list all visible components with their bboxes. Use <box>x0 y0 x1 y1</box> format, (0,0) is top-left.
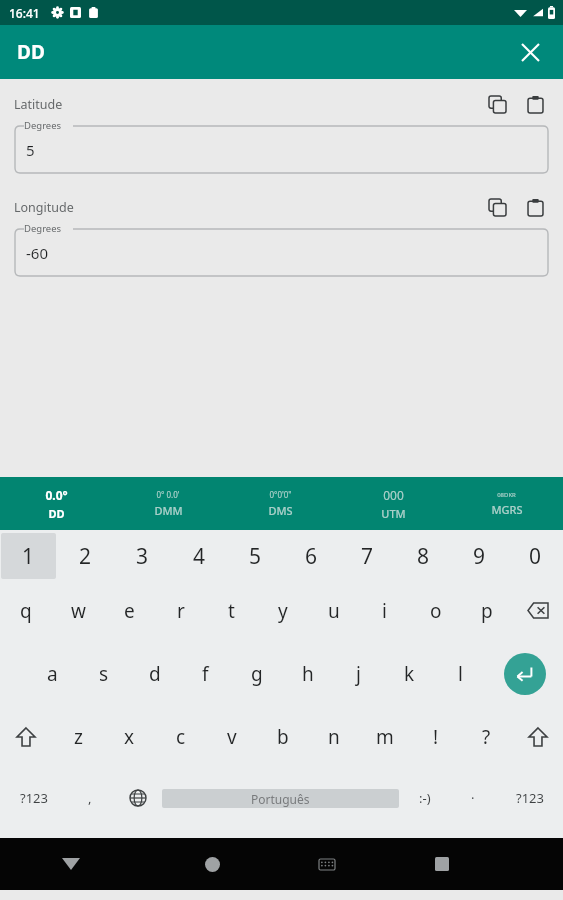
button[interactable]: 0.0° <box>0 477 112 530</box>
button[interactable]: ?123 <box>496 768 563 828</box>
button[interactable]: Shift <box>512 705 563 768</box>
staticText: v <box>227 724 237 750</box>
button[interactable]: 6 <box>284 533 338 579</box>
button[interactable]: 8 <box>396 533 450 579</box>
button[interactable]: g <box>231 642 282 705</box>
button[interactable]: n <box>308 705 359 768</box>
staticText: :-) <box>419 789 431 807</box>
button[interactable]: Backspace <box>512 579 563 642</box>
staticText: DMS <box>268 503 293 518</box>
button[interactable]: , <box>67 768 113 828</box>
staticText: m <box>376 724 394 750</box>
button[interactable]: :-) <box>399 768 450 828</box>
button[interactable]: t <box>206 579 257 642</box>
button[interactable]: Hide keyboard <box>0 838 141 890</box>
staticText: l <box>458 661 463 687</box>
button[interactable]: 5 <box>228 533 282 579</box>
staticText: j <box>356 661 361 687</box>
button[interactable]: ? <box>461 705 512 768</box>
button[interactable]: 9 <box>452 533 506 579</box>
button[interactable]: i <box>359 579 410 642</box>
staticText: g <box>251 661 263 687</box>
button[interactable]: k <box>384 642 435 705</box>
button[interactable]: · <box>450 768 496 828</box>
staticText: MGRS <box>491 502 523 517</box>
button[interactable]: e <box>104 579 155 642</box>
button[interactable]: Shift <box>0 705 52 768</box>
button[interactable]: Change language <box>113 768 162 828</box>
staticText: c <box>176 724 186 750</box>
button[interactable]: x <box>104 705 155 768</box>
button[interactable]: 2 <box>58 533 113 579</box>
staticText: DMM <box>154 503 183 518</box>
staticText: q <box>20 598 32 624</box>
button[interactable]: Português <box>162 768 399 828</box>
staticText: 5 <box>249 542 262 571</box>
button[interactable]: 000 <box>337 477 450 530</box>
button[interactable]: v <box>206 705 257 768</box>
button[interactable]: Paste Longitude <box>517 191 553 223</box>
button[interactable]: 4 <box>172 533 226 579</box>
button[interactable]: Close <box>509 31 551 73</box>
button[interactable]: c <box>155 705 206 768</box>
button[interactable]: 0° 0.0' <box>112 477 224 530</box>
button[interactable]: z <box>52 705 104 768</box>
staticText: t <box>228 598 235 624</box>
button[interactable]: j <box>333 642 384 705</box>
button[interactable]: ?123 <box>0 768 67 828</box>
button[interactable]: 0°0'0" <box>224 477 337 530</box>
staticText: 0.0° <box>45 487 68 503</box>
button[interactable]: Paste Latitude <box>517 88 553 120</box>
button[interactable]: Degrees <box>15 120 548 173</box>
button[interactable]: 1 <box>1 533 56 579</box>
staticText: b <box>277 724 289 750</box>
staticText: -60 <box>26 243 48 263</box>
button[interactable]: r <box>155 579 206 642</box>
staticText: u <box>328 598 340 624</box>
staticText: 0° 0.0' <box>156 489 180 500</box>
button[interactable]: s <box>78 642 129 705</box>
staticText: UTM <box>381 506 406 521</box>
staticText: · <box>471 789 475 807</box>
staticText: Degrees <box>24 222 62 235</box>
button[interactable]: o <box>410 579 461 642</box>
button[interactable]: m <box>359 705 410 768</box>
button[interactable]: Enter <box>486 642 563 705</box>
staticText: 0 <box>529 542 542 571</box>
button[interactable]: p <box>461 579 512 642</box>
staticText: 08DKR <box>497 491 516 499</box>
staticText: 16:41 <box>9 5 40 21</box>
button[interactable]: b <box>257 705 308 768</box>
button[interactable]: f <box>180 642 231 705</box>
button[interactable]: 7 <box>340 533 394 579</box>
staticText: f <box>202 661 209 687</box>
staticText: w <box>71 598 86 624</box>
staticText: 4 <box>193 542 206 571</box>
button[interactable]: ! <box>410 705 461 768</box>
button[interactable]: Degrees <box>15 223 548 276</box>
button[interactable]: q <box>0 579 52 642</box>
button[interactable]: a <box>27 642 78 705</box>
staticText: DD <box>17 39 45 65</box>
staticText: Latitude <box>14 96 63 113</box>
button[interactable]: h <box>282 642 333 705</box>
staticText: 9 <box>473 542 486 571</box>
button[interactable]: Copy Latitude <box>479 88 515 120</box>
staticText: s <box>99 661 109 687</box>
button[interactable]: y <box>257 579 308 642</box>
button[interactable]: w <box>52 579 104 642</box>
staticText: d <box>149 661 161 687</box>
button[interactable]: Switch keyboard <box>283 838 371 890</box>
staticText: , <box>88 789 92 807</box>
button[interactable]: d <box>129 642 180 705</box>
button[interactable]: l <box>435 642 486 705</box>
button[interactable]: u <box>308 579 359 642</box>
button[interactable]: 08DKR <box>450 477 563 530</box>
button[interactable]: 3 <box>115 533 170 579</box>
button[interactable]: Copy Longitude <box>479 191 515 223</box>
button[interactable]: Home <box>141 838 283 890</box>
staticText: k <box>404 661 415 687</box>
button[interactable]: Recents <box>371 838 513 890</box>
staticText: 6 <box>305 542 318 571</box>
button[interactable]: 0 <box>508 533 562 579</box>
